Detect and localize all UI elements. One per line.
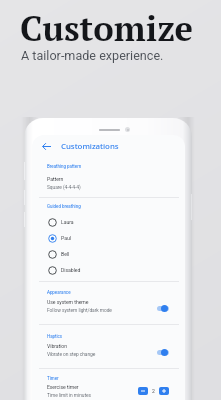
staticText: Square (4-4-4-4) [47, 184, 81, 190]
staticText: Pattern [47, 176, 64, 182]
staticText: Customizations [61, 141, 119, 152]
staticText: Use system theme [47, 299, 89, 305]
other: Back [41, 141, 52, 152]
staticText: Breathing pattern [47, 164, 82, 169]
staticText: Vibration [47, 343, 68, 349]
button[interactable]: Increase [159, 387, 169, 395]
button[interactable]: Decrease [138, 387, 148, 395]
staticText: Bell [61, 251, 70, 257]
staticText: Vibrate on step change [47, 351, 96, 357]
staticText: A tailor-made experience. [21, 48, 164, 63]
staticText: Disabled [61, 267, 81, 273]
staticText: Customize [20, 5, 193, 51]
button[interactable]: Vibration [32, 343, 185, 357]
button[interactable]: Pattern [32, 176, 185, 190]
button[interactable]: Laura [32, 214, 185, 230]
staticText: Follow system light/dark mode [47, 307, 112, 313]
staticText: Guided breathing [47, 204, 81, 209]
staticText: Time limit in minutes [47, 392, 91, 398]
staticText: Exercise timer [47, 384, 79, 390]
button[interactable]: Disabled [32, 262, 185, 278]
staticText: Timer [47, 376, 59, 381]
button[interactable]: Paul [32, 230, 185, 246]
staticText: Paul [61, 235, 71, 241]
staticText: 2 [152, 388, 155, 394]
staticText: Haptics [47, 334, 63, 339]
button[interactable]: Bell [32, 246, 185, 262]
staticText: Appearance [47, 290, 71, 295]
button[interactable]: Use system theme [32, 299, 185, 313]
button[interactable]: Back [32, 135, 185, 157]
staticText: Laura [61, 219, 74, 225]
